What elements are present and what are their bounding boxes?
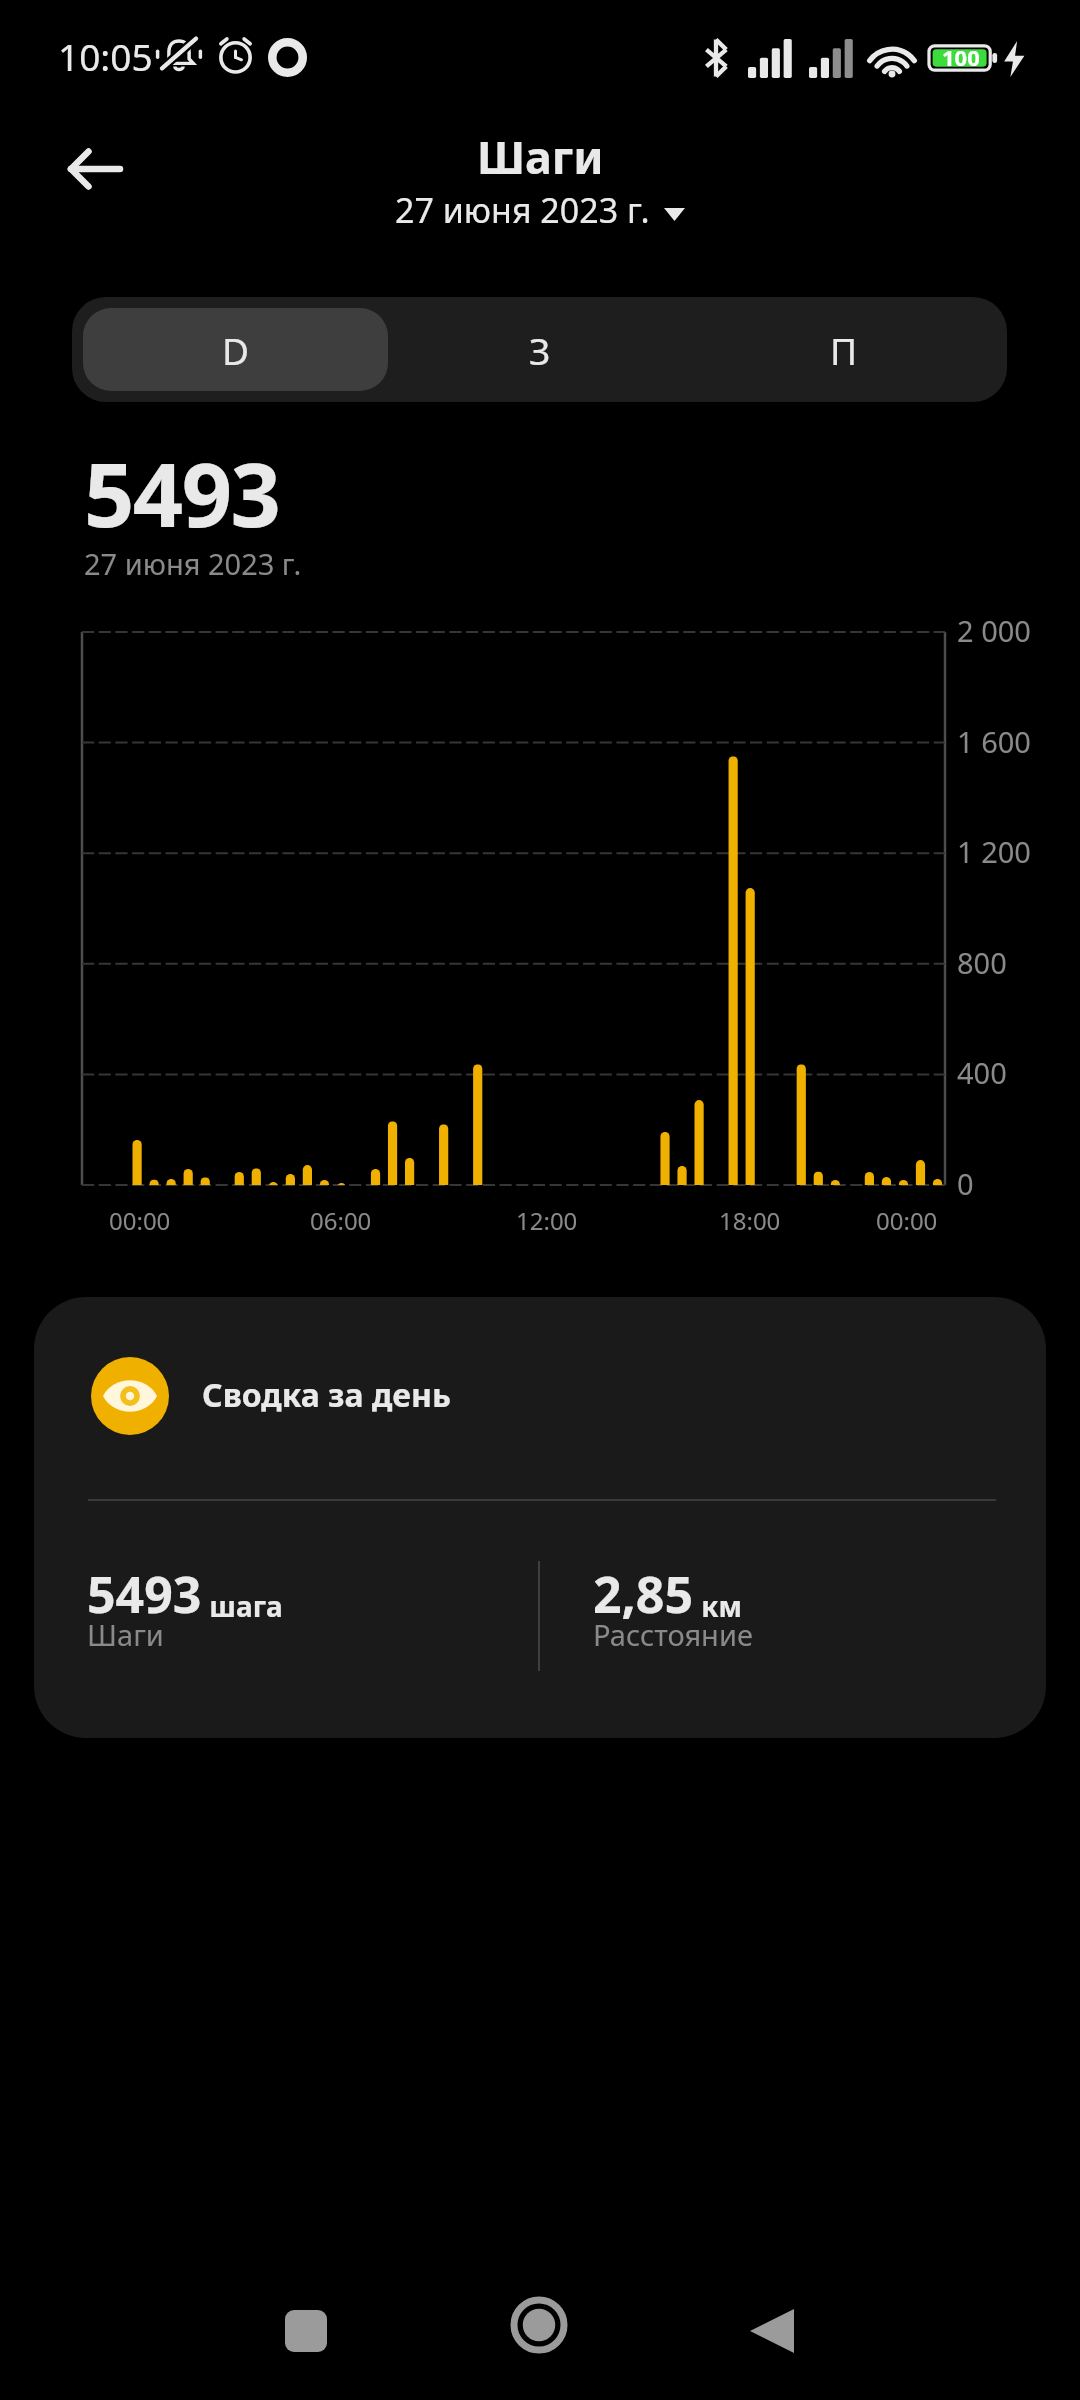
button[interactable]: П (692, 308, 996, 391)
staticText: 800 (957, 943, 1007, 982)
staticText: 5493 (84, 433, 280, 553)
staticText: Шаги (477, 126, 604, 187)
button[interactable]: Шаги (395, 126, 685, 233)
staticText: 100 (942, 42, 980, 72)
staticText: км (694, 1587, 742, 1625)
staticText: 27 июня 2023 г. (395, 187, 650, 233)
staticText: Шаги (87, 1615, 164, 1654)
button[interactable]: Recent apps (262, 2287, 350, 2375)
button[interactable]: З (388, 308, 692, 391)
staticText: П (830, 325, 858, 375)
staticText: 12:00 (516, 1204, 578, 1237)
staticText: Расстояние (593, 1615, 753, 1654)
staticText: Сводка за день (202, 1373, 451, 1417)
staticText: 00:00 (876, 1204, 938, 1237)
staticText: 2,85 (593, 1560, 694, 1628)
button[interactable]: Back (41, 125, 149, 213)
button[interactable]: D (83, 308, 388, 391)
staticText: шага (202, 1587, 283, 1625)
button[interactable]: Back (728, 2287, 816, 2375)
staticText: D (222, 325, 250, 375)
staticText: 0 (957, 1164, 974, 1203)
staticText: 2 000 (957, 611, 1031, 650)
staticText: 10:05 (58, 31, 153, 81)
staticText: 27 июня 2023 г. (84, 544, 302, 583)
button[interactable]: Сводка за день (34, 1297, 1046, 1738)
staticText: 5493 (87, 1560, 202, 1628)
staticText: 400 (957, 1053, 1007, 1092)
staticText: 1 200 (957, 832, 1031, 871)
staticText: 1 600 (957, 722, 1031, 761)
staticText: 18:00 (719, 1204, 781, 1237)
staticText: З (529, 325, 551, 375)
staticText: 06:00 (310, 1204, 372, 1237)
staticText: 00:00 (109, 1204, 171, 1237)
button[interactable]: Home (495, 2281, 583, 2369)
